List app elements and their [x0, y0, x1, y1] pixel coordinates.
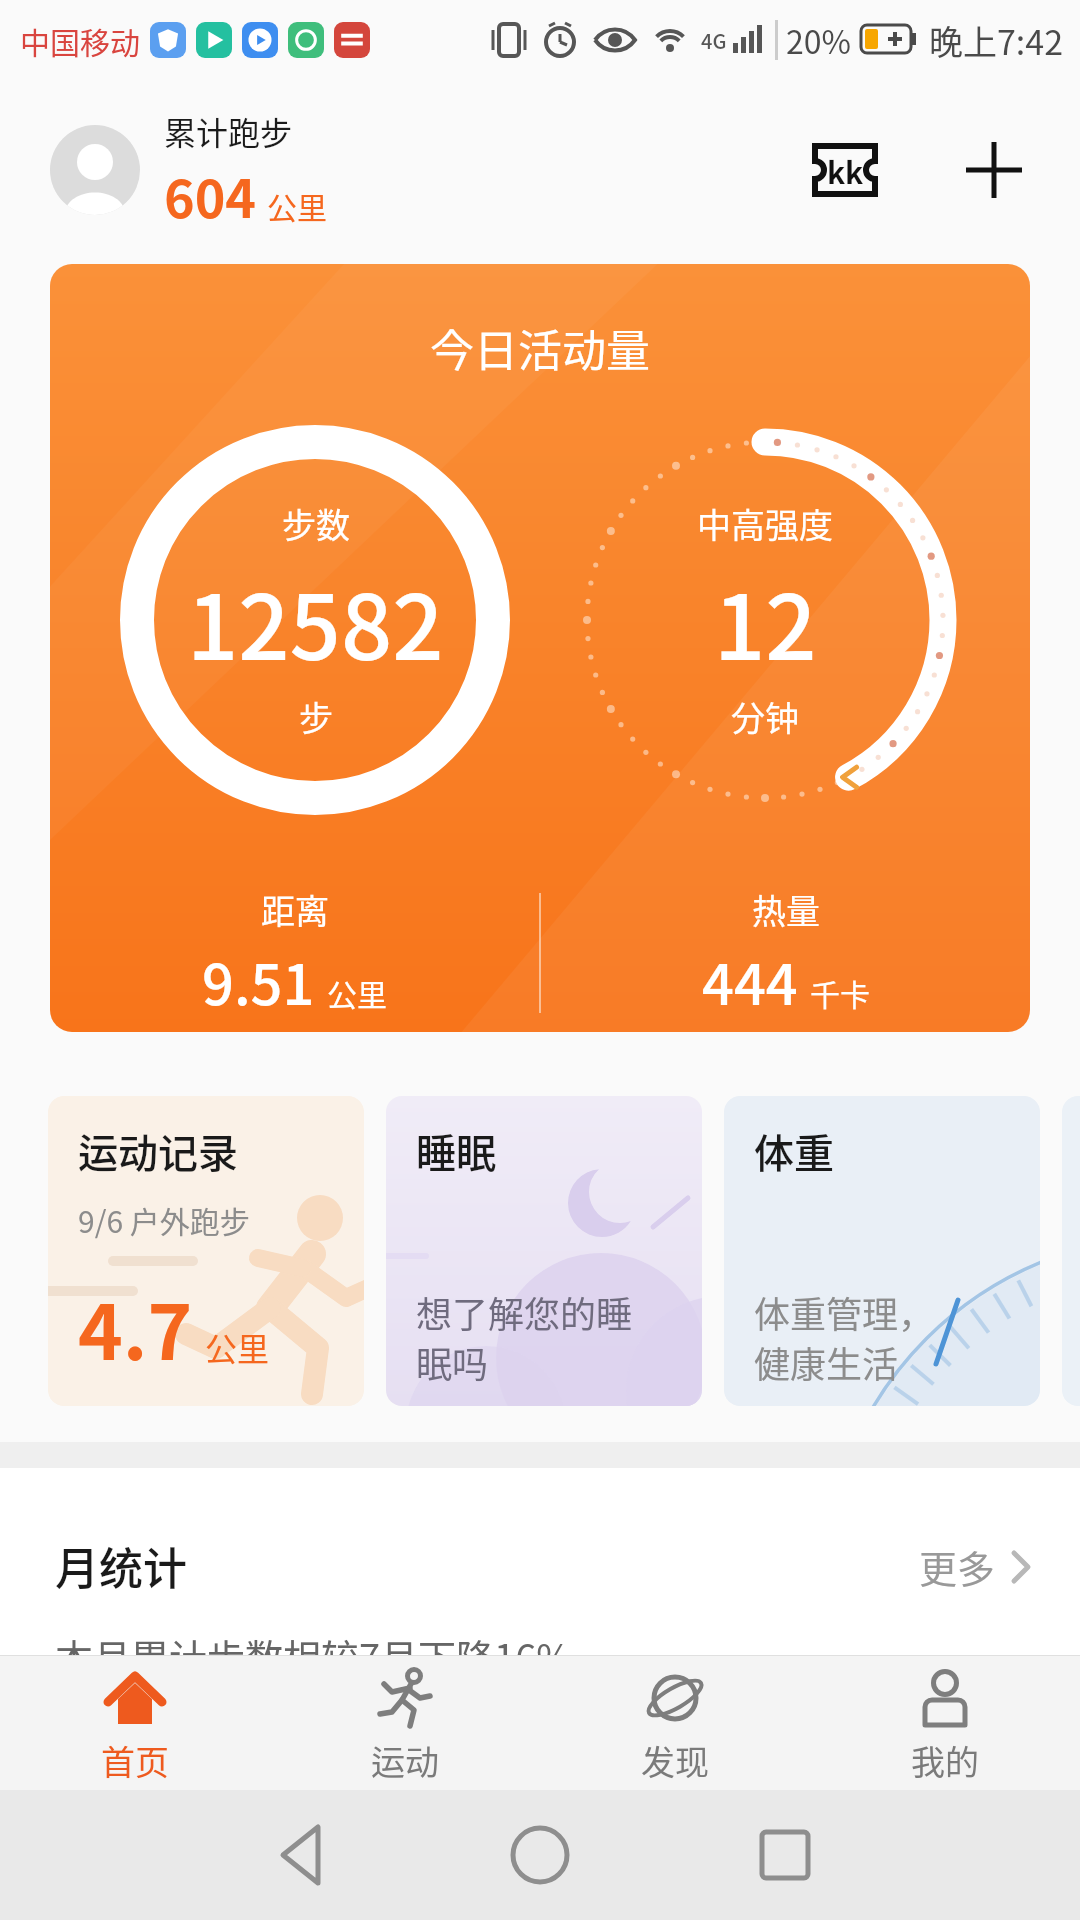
staticText: 中国移动 — [20, 19, 140, 62]
staticText: 4.7 — [78, 1272, 193, 1382]
staticText: 分钟 — [731, 692, 799, 741]
staticText: 首页 — [101, 1736, 169, 1785]
staticText: 热量 — [752, 885, 820, 934]
staticText: 步数 — [282, 499, 350, 548]
staticText: 4G — [701, 26, 727, 55]
staticText: 9/6 户外跑步 — [78, 1198, 250, 1241]
staticText: 运动 — [371, 1736, 439, 1785]
staticText: 12 — [714, 556, 817, 686]
staticText: 晚上7:42 — [929, 16, 1064, 65]
staticText: 体重 — [754, 1122, 834, 1180]
staticText: 睡眠 — [416, 1122, 496, 1180]
staticText: 本月累计步数相较7月下降16% — [55, 1628, 572, 1683]
staticText: 20% — [786, 17, 851, 63]
staticText: 我的 — [911, 1736, 979, 1785]
staticText: 距离 — [261, 885, 329, 934]
staticText: kk — [827, 149, 864, 192]
button[interactable]: 首页 — [0, 1656, 270, 1790]
button[interactable]: 我的 — [810, 1656, 1080, 1790]
staticText: 运动记录 — [78, 1122, 238, 1180]
button[interactable] — [720, 1790, 1080, 1920]
button[interactable]: 今日活动量 — [50, 264, 1030, 1032]
button[interactable] — [50, 125, 140, 215]
staticText: 公里 — [267, 184, 327, 227]
staticText: 公里 — [327, 971, 387, 1014]
staticText: 步 — [299, 692, 333, 741]
staticText: 月统计 — [55, 1534, 187, 1598]
staticText: 体重管理， 健康生活 — [754, 1286, 935, 1388]
staticText: 9.51 — [202, 940, 315, 1021]
button[interactable]: 更多 — [919, 1539, 1032, 1594]
staticText: 12582 — [187, 556, 444, 686]
staticText: 中高强度 — [697, 499, 833, 548]
staticText: 公里 — [205, 1324, 270, 1370]
staticText: 更多 — [919, 1539, 996, 1594]
button[interactable]: 累计跑步 — [164, 108, 327, 233]
staticText: 444 — [702, 940, 798, 1021]
button[interactable]: 发现 — [540, 1656, 810, 1790]
button[interactable] — [360, 1790, 720, 1920]
staticText: 今日活动量 — [430, 316, 650, 380]
button[interactable] — [0, 1790, 360, 1920]
button[interactable]: 运动 — [270, 1656, 540, 1790]
staticText: 发现 — [641, 1736, 709, 1785]
button[interactable]: 体重 — [724, 1096, 1040, 1406]
button[interactable]: 运动记录 — [48, 1096, 364, 1406]
staticText: 604 — [164, 158, 257, 233]
button[interactable]: kk — [812, 143, 878, 197]
button[interactable]: 睡眠 — [386, 1096, 702, 1406]
staticText: 千卡 — [810, 971, 870, 1014]
button[interactable] — [966, 142, 1022, 198]
staticText: 想了解您的睡 眠吗 — [416, 1286, 633, 1388]
staticText: 累计跑步 — [164, 108, 293, 154]
